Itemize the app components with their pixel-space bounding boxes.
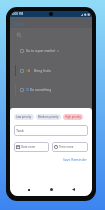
- button[interactable]: Task: [14, 125, 88, 136]
- button[interactable]: Back: [69, 185, 78, 194]
- staticText: Task: [13, 20, 25, 27]
- staticText: Task: [16, 128, 24, 133]
- staticText: Date none: [21, 145, 36, 149]
- button[interactable]: Do something: [10, 84, 92, 95]
- staticText: Low priority: [16, 115, 32, 119]
- staticText: Medium priority: [38, 115, 59, 119]
- staticText: Do something: [30, 88, 52, 92]
- staticText: Time none: [59, 145, 74, 149]
- button[interactable]: Time none: [52, 142, 88, 152]
- staticText: Go to super market: [26, 49, 56, 53]
- button[interactable]: Medium priority: [36, 114, 61, 120]
- staticText: High priority: [65, 115, 81, 119]
- button[interactable]: High priority: [63, 114, 83, 120]
- button[interactable]: Recent apps: [24, 185, 33, 194]
- button[interactable]: Date none: [14, 142, 49, 152]
- staticText: Bring fruits: [34, 69, 51, 73]
- button[interactable]: Bring fruits: [10, 65, 92, 76]
- button[interactable]: Home: [47, 185, 56, 194]
- button[interactable]: Go to super market: [10, 45, 92, 56]
- button[interactable]: Low priority: [14, 114, 34, 120]
- button[interactable]: Search: [16, 32, 22, 38]
- button[interactable]: Save Reminder: [62, 156, 88, 163]
- staticText: 4:08 PM: [12, 12, 24, 16]
